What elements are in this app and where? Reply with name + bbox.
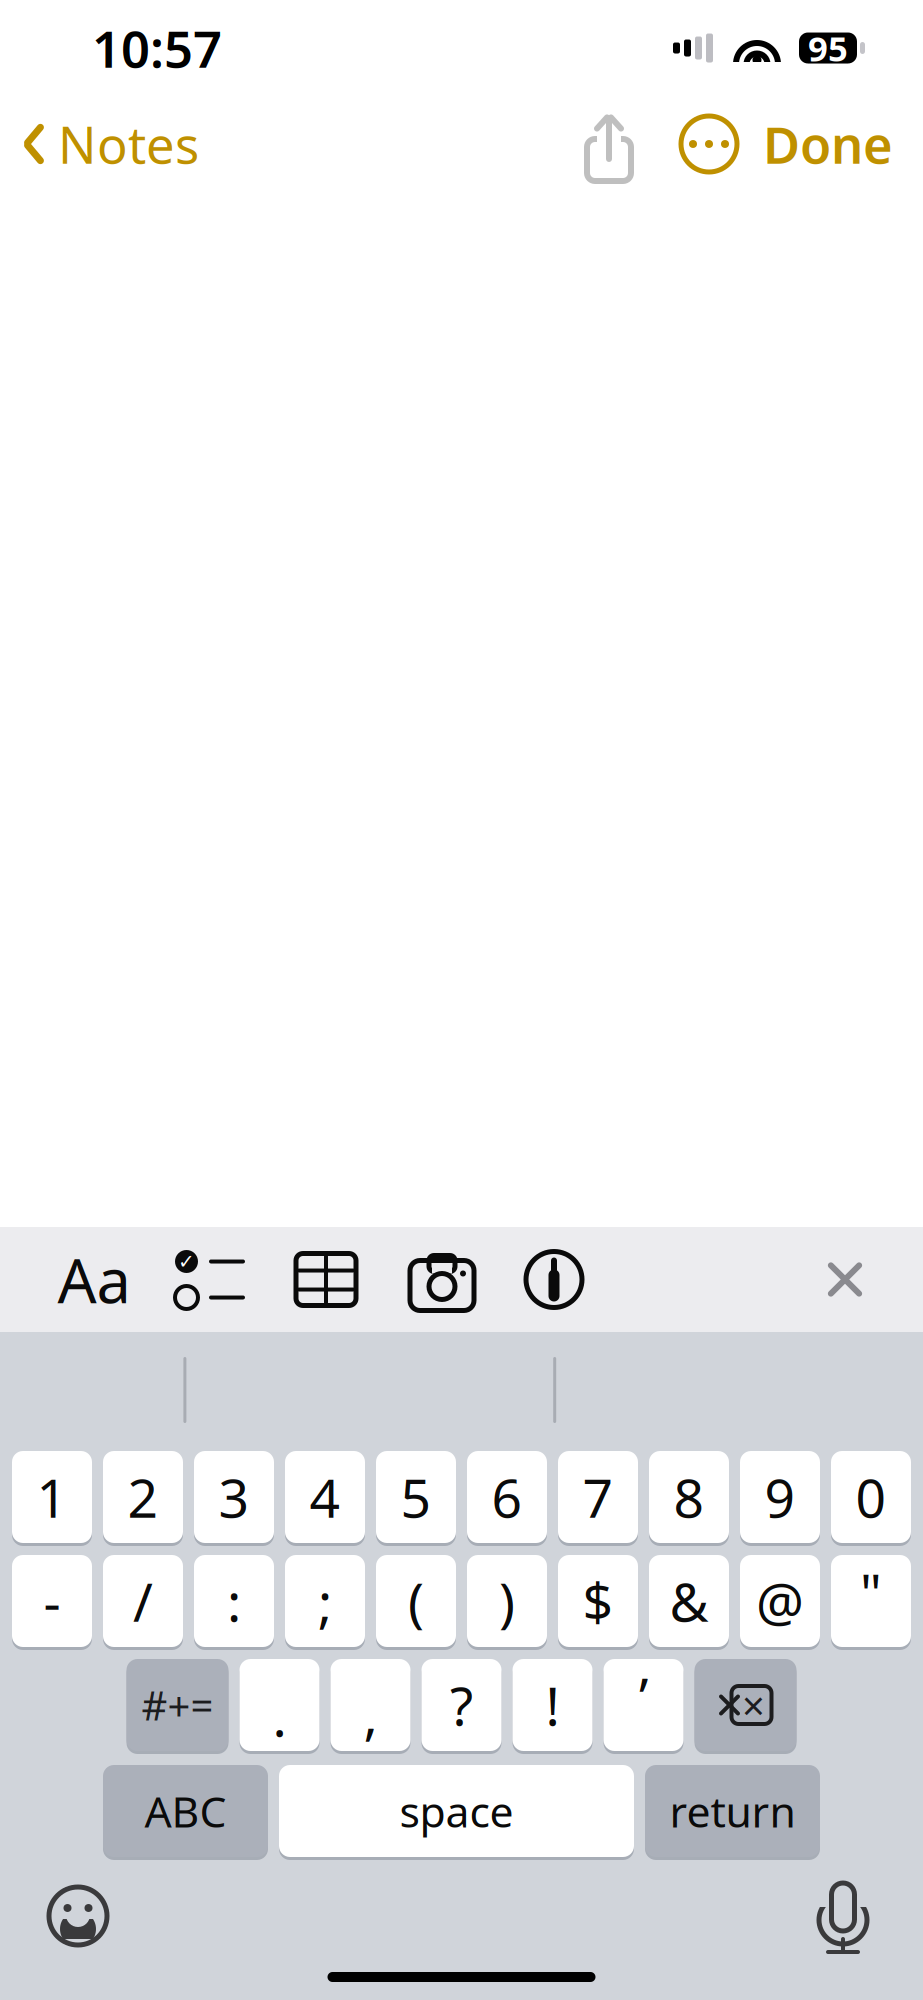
staticText: 95 xyxy=(808,25,848,71)
button[interactable]: 6 xyxy=(467,1448,547,1546)
staticText: ; xyxy=(318,1566,332,1636)
button[interactable]: #+= xyxy=(126,1656,228,1754)
staticText: " xyxy=(860,1557,882,1627)
staticText: ! xyxy=(545,1670,559,1740)
staticText: ✓ xyxy=(178,1250,195,1273)
button[interactable]: ) xyxy=(467,1552,547,1650)
staticText: @ xyxy=(756,1566,804,1636)
button[interactable]: ( xyxy=(376,1552,456,1650)
button[interactable]: : xyxy=(194,1552,274,1650)
staticText: Done xyxy=(763,110,893,178)
staticText: ( xyxy=(408,1566,424,1636)
button[interactable]: @ xyxy=(740,1552,820,1650)
staticText: - xyxy=(43,1566,60,1636)
button[interactable]: / xyxy=(103,1552,183,1650)
button[interactable]: , xyxy=(330,1656,410,1754)
button[interactable]: Dictate xyxy=(795,1868,891,1964)
button[interactable]: 4 xyxy=(285,1448,365,1546)
button[interactable]: 2 xyxy=(103,1448,183,1546)
staticText: Notes xyxy=(58,110,199,178)
staticText: 6 xyxy=(491,1462,522,1532)
staticText: 8 xyxy=(673,1462,704,1532)
button[interactable]: ; xyxy=(285,1552,365,1650)
staticText: 0 xyxy=(855,1462,886,1532)
staticText: ’ xyxy=(639,1661,648,1731)
staticText: 10:57 xyxy=(92,14,222,82)
staticText: 9 xyxy=(764,1462,795,1532)
button[interactable]: Delete xyxy=(694,1656,796,1754)
staticText: Aa xyxy=(57,1239,130,1320)
button[interactable]: space xyxy=(279,1762,634,1860)
staticText: / xyxy=(133,1566,153,1636)
button[interactable]: - xyxy=(12,1552,92,1650)
staticText: 3 xyxy=(218,1462,249,1532)
staticText: ABC xyxy=(144,1783,226,1839)
staticText: 7 xyxy=(582,1462,613,1532)
button[interactable]: 3 xyxy=(194,1448,274,1546)
button[interactable]: Close keyboard xyxy=(795,1227,895,1332)
staticText: 5 xyxy=(400,1462,431,1532)
button[interactable]: 0 xyxy=(831,1448,911,1546)
button[interactable]: 5 xyxy=(376,1448,456,1546)
button[interactable]: . xyxy=(239,1656,319,1754)
button[interactable]: Markup xyxy=(504,1227,604,1332)
staticText: 2 xyxy=(127,1462,158,1532)
button[interactable]: 7 xyxy=(558,1448,638,1546)
staticText: $ xyxy=(582,1566,613,1636)
button[interactable]: & xyxy=(649,1552,729,1650)
button[interactable]: Notes xyxy=(0,98,199,190)
staticText: #+= xyxy=(141,1678,213,1731)
button[interactable]: Done xyxy=(749,98,907,190)
button[interactable]: ABC xyxy=(103,1762,268,1860)
button[interactable]: 1 xyxy=(12,1448,92,1546)
staticText: return xyxy=(669,1783,795,1839)
staticText: : xyxy=(227,1566,241,1636)
button[interactable]: $ xyxy=(558,1552,638,1650)
button[interactable]: 8 xyxy=(649,1448,729,1546)
staticText: ) xyxy=(499,1566,515,1636)
button[interactable]: Camera xyxy=(392,1227,492,1332)
button[interactable]: ? xyxy=(421,1656,501,1754)
button[interactable]: Table xyxy=(276,1227,376,1332)
button[interactable]: More xyxy=(669,104,749,184)
staticText: . xyxy=(272,1681,286,1751)
button[interactable]: " xyxy=(831,1552,911,1650)
staticText: × xyxy=(742,1678,765,1731)
staticText: 1 xyxy=(36,1462,67,1532)
button[interactable]: Share xyxy=(573,104,645,184)
staticText: space xyxy=(399,1783,513,1839)
staticText: , xyxy=(363,1679,377,1749)
staticText: & xyxy=(669,1566,708,1636)
button[interactable]: ’ xyxy=(603,1656,683,1754)
button[interactable]: 9 xyxy=(740,1448,820,1546)
button[interactable]: Format xyxy=(44,1227,144,1332)
button[interactable]: Checklist xyxy=(160,1227,260,1332)
button[interactable]: return xyxy=(645,1762,820,1860)
staticText: ? xyxy=(450,1670,473,1740)
button[interactable]: Emoji xyxy=(30,1868,126,1964)
button[interactable]: ! xyxy=(512,1656,592,1754)
staticText: 4 xyxy=(309,1462,340,1532)
